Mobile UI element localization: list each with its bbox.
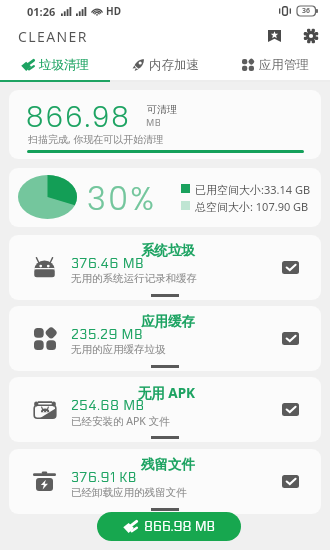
staticText: 总空间大小: 107.90 GB bbox=[195, 199, 309, 214]
staticText: 已用空间大小:33.14 GB bbox=[195, 182, 311, 197]
staticText: 残留文件 bbox=[71, 456, 195, 473]
staticText: 无用的应用缓存垃圾 bbox=[71, 343, 166, 356]
staticText: CLEANER bbox=[18, 27, 88, 46]
button[interactable]: 866.98 bbox=[9, 90, 321, 159]
staticText: 无用的系统运行记录和缓存 bbox=[71, 272, 197, 285]
button[interactable]: 系统垃圾 bbox=[9, 235, 321, 300]
staticText: 376.91 KB bbox=[71, 470, 137, 485]
button[interactable]: 应用管理 bbox=[220, 50, 330, 80]
button[interactable]: 无用 APK bbox=[9, 377, 321, 442]
button[interactable]: Select 残留文件 bbox=[282, 475, 299, 488]
staticText: 已经安装的 APK 文件 bbox=[71, 414, 170, 428]
staticText: MB bbox=[146, 118, 162, 129]
staticText: 36 bbox=[302, 6, 311, 16]
button[interactable]: Select 无用 APK bbox=[282, 403, 299, 416]
button[interactable]: Favorites bbox=[261, 23, 287, 49]
button[interactable]: 866.98 MB bbox=[97, 512, 241, 541]
staticText: 已经卸载应用的残留文件 bbox=[71, 486, 187, 499]
staticText: 866.98 MB bbox=[144, 519, 216, 534]
button[interactable]: 内存加速 bbox=[110, 50, 220, 80]
staticText: 扫描完成, 你现在可以开始清理 bbox=[28, 132, 164, 146]
staticText: 内存加速 bbox=[149, 57, 199, 73]
staticText: 235.29 MB bbox=[71, 327, 144, 342]
staticText: 垃圾清理 bbox=[39, 57, 89, 73]
staticText: 无用 APK bbox=[71, 384, 195, 402]
staticText: 系统垃圾 bbox=[71, 242, 195, 259]
button[interactable]: 残留文件 bbox=[9, 449, 321, 514]
staticText: 应用管理 bbox=[259, 57, 309, 73]
button[interactable]: Select 系统垃圾 bbox=[282, 261, 299, 274]
button[interactable]: 应用缓存 bbox=[9, 306, 321, 371]
button[interactable]: 垃圾清理 bbox=[0, 50, 110, 80]
staticText: 01:26 bbox=[27, 4, 56, 19]
button[interactable]: Settings bbox=[298, 23, 324, 49]
staticText: 376.46 MB bbox=[71, 256, 145, 271]
button[interactable]: Select 应用缓存 bbox=[282, 332, 299, 345]
button[interactable]: 30% bbox=[9, 168, 321, 227]
staticText: 30% bbox=[87, 176, 157, 221]
staticText: 254.68 MB bbox=[71, 398, 145, 413]
staticText: HD bbox=[106, 4, 121, 18]
staticText: 可清理 bbox=[147, 103, 177, 116]
staticText: 应用缓存 bbox=[71, 313, 195, 330]
staticText: 866.98 bbox=[26, 98, 131, 137]
